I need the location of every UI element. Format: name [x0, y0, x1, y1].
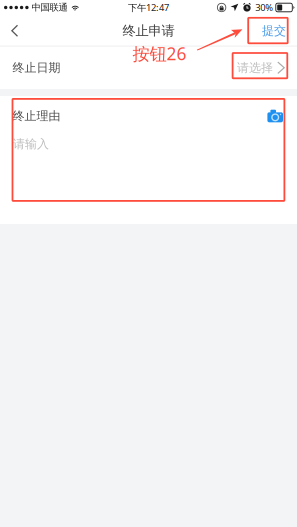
button[interactable]: 提交 — [248, 15, 297, 46]
staticText: 终止申请 — [122, 23, 174, 39]
staticText: 提交 — [262, 23, 286, 38]
staticText: 下午12:47 — [128, 1, 169, 14]
staticText: 按钮26 — [132, 42, 186, 65]
button[interactable]: 返回 — [0, 15, 32, 46]
staticText: 终止理由 — [12, 109, 60, 123]
staticText: 请输入 — [13, 137, 49, 151]
staticText: 中国联通 — [32, 2, 68, 13]
staticText: 30% — [255, 1, 273, 14]
button[interactable]: 拍照 — [259, 105, 283, 127]
button[interactable]: 请输入 — [0, 136, 297, 152]
button[interactable]: 终止日期 — [0, 46, 297, 89]
staticText: 终止日期 — [12, 60, 60, 75]
staticText: 请选择 — [237, 60, 273, 75]
